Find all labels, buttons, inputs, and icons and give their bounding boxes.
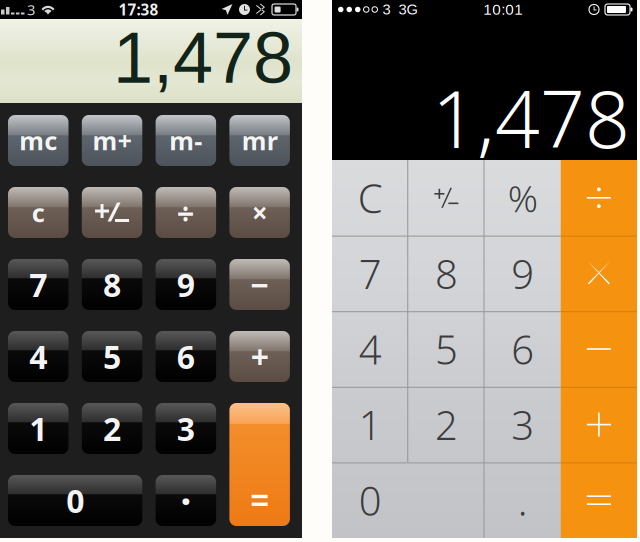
button[interactable]: mr xyxy=(229,115,290,166)
staticText: 3 xyxy=(511,397,534,452)
button[interactable]: 3 xyxy=(484,387,561,462)
staticText: % xyxy=(508,172,538,223)
staticText: . xyxy=(518,473,528,527)
button[interactable]: × xyxy=(229,187,290,238)
staticText: 3 xyxy=(177,407,195,450)
button[interactable] xyxy=(82,187,142,238)
staticText: m- xyxy=(169,123,202,158)
staticText: + xyxy=(251,335,269,378)
staticText: m+ xyxy=(93,123,132,158)
button[interactable]: 2 xyxy=(408,387,484,462)
staticText: · xyxy=(180,473,191,528)
staticText: 3 xyxy=(382,1,390,18)
button[interactable]: divide xyxy=(561,160,637,236)
staticText: 0 xyxy=(66,479,84,522)
staticText: 1 xyxy=(359,397,382,452)
staticText: 9 xyxy=(511,246,534,301)
staticText: 2 xyxy=(435,397,458,452)
button[interactable]: C xyxy=(332,160,408,236)
button[interactable]: minus xyxy=(561,311,637,387)
staticText: 8 xyxy=(435,246,458,301)
staticText: 7 xyxy=(29,263,47,306)
staticText: mr xyxy=(242,123,278,158)
button[interactable]: 1 xyxy=(332,387,408,462)
staticText: 17:38 xyxy=(118,0,158,20)
button[interactable]: 5 xyxy=(82,331,142,382)
button[interactable]: 9 xyxy=(156,259,216,310)
staticText: 6 xyxy=(511,322,534,376)
button[interactable]: m+ xyxy=(82,115,142,166)
button[interactable]: ÷ xyxy=(156,187,216,238)
staticText: 8 xyxy=(103,263,121,306)
staticText: mc xyxy=(19,123,57,158)
staticText: ÷ xyxy=(177,192,195,233)
staticText: 2 xyxy=(103,407,121,450)
button[interactable]: m- xyxy=(156,115,216,166)
button[interactable]: plus xyxy=(561,387,637,462)
button[interactable]: 1 xyxy=(8,403,68,454)
button[interactable]: 4 xyxy=(8,331,68,382)
button[interactable]: plusminus xyxy=(408,160,484,236)
button[interactable]: 7 xyxy=(8,259,68,310)
button[interactable]: equal xyxy=(561,462,637,538)
staticText: 4 xyxy=(29,335,47,378)
staticText: 6 xyxy=(177,335,195,378)
staticText: 1,478 xyxy=(113,18,293,98)
button[interactable]: 5 xyxy=(408,311,484,387)
button[interactable]: 7 xyxy=(332,236,408,311)
staticText: 4 xyxy=(359,322,382,376)
staticText: 1,478 xyxy=(432,64,630,171)
staticText: 3G xyxy=(398,1,417,18)
button[interactable]: − xyxy=(229,259,290,310)
staticText: − xyxy=(250,263,269,306)
button[interactable]: 6 xyxy=(484,311,561,387)
button[interactable]: 6 xyxy=(156,331,216,382)
button[interactable]: % xyxy=(484,160,561,236)
button[interactable]: . xyxy=(484,462,561,538)
staticText: 1 xyxy=(29,407,47,450)
staticText: C xyxy=(358,171,383,225)
button[interactable]: 0 xyxy=(8,475,142,526)
button[interactable]: 8 xyxy=(408,236,484,311)
button[interactable]: · xyxy=(156,475,216,526)
button[interactable]: 2 xyxy=(82,403,142,454)
button[interactable]: 3 xyxy=(156,403,216,454)
staticText: 3 xyxy=(27,0,35,19)
button[interactable]: c xyxy=(8,187,68,238)
staticText: 0 xyxy=(359,473,382,527)
staticText: 9 xyxy=(177,263,195,306)
staticText: 5 xyxy=(435,322,458,376)
button[interactable]: 0 xyxy=(332,462,408,538)
button[interactable]: mc xyxy=(8,115,68,166)
button[interactable]: 4 xyxy=(332,311,408,387)
button[interactable]: Equals xyxy=(229,403,290,526)
button[interactable]: multiply xyxy=(561,236,637,311)
staticText: c xyxy=(32,195,45,230)
staticText: 7 xyxy=(359,246,382,301)
button[interactable]: 9 xyxy=(484,236,561,311)
staticText: × xyxy=(252,193,268,231)
button[interactable]: 8 xyxy=(82,259,142,310)
button[interactable]: + xyxy=(229,331,290,382)
staticText: 10:01 xyxy=(483,1,523,18)
staticText: 5 xyxy=(103,335,121,378)
